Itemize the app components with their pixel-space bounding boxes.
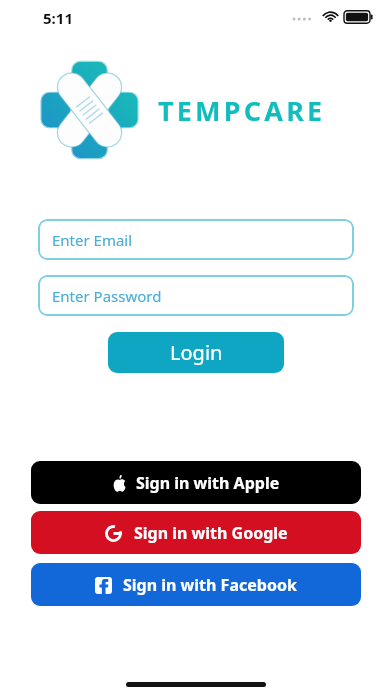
button[interactable]: Login xyxy=(108,332,284,373)
staticText: Sign in with Facebook xyxy=(123,574,297,596)
staticText: Sign in with Apple xyxy=(136,472,280,494)
staticText: Sign in with Google xyxy=(134,522,288,544)
staticText: 5:11 xyxy=(43,8,73,28)
staticText: Login xyxy=(170,339,223,366)
button[interactable]: Sign in with Apple xyxy=(31,461,361,504)
button[interactable]: Sign in with Google xyxy=(31,511,361,554)
staticText: TEMPCARE xyxy=(158,92,326,129)
button[interactable]: Enter Email xyxy=(38,219,354,260)
button[interactable]: Enter Password xyxy=(38,275,354,316)
button[interactable]: Sign in with Facebook xyxy=(31,563,361,606)
staticText: Enter Password xyxy=(52,286,162,306)
staticText: Enter Email xyxy=(52,230,133,250)
